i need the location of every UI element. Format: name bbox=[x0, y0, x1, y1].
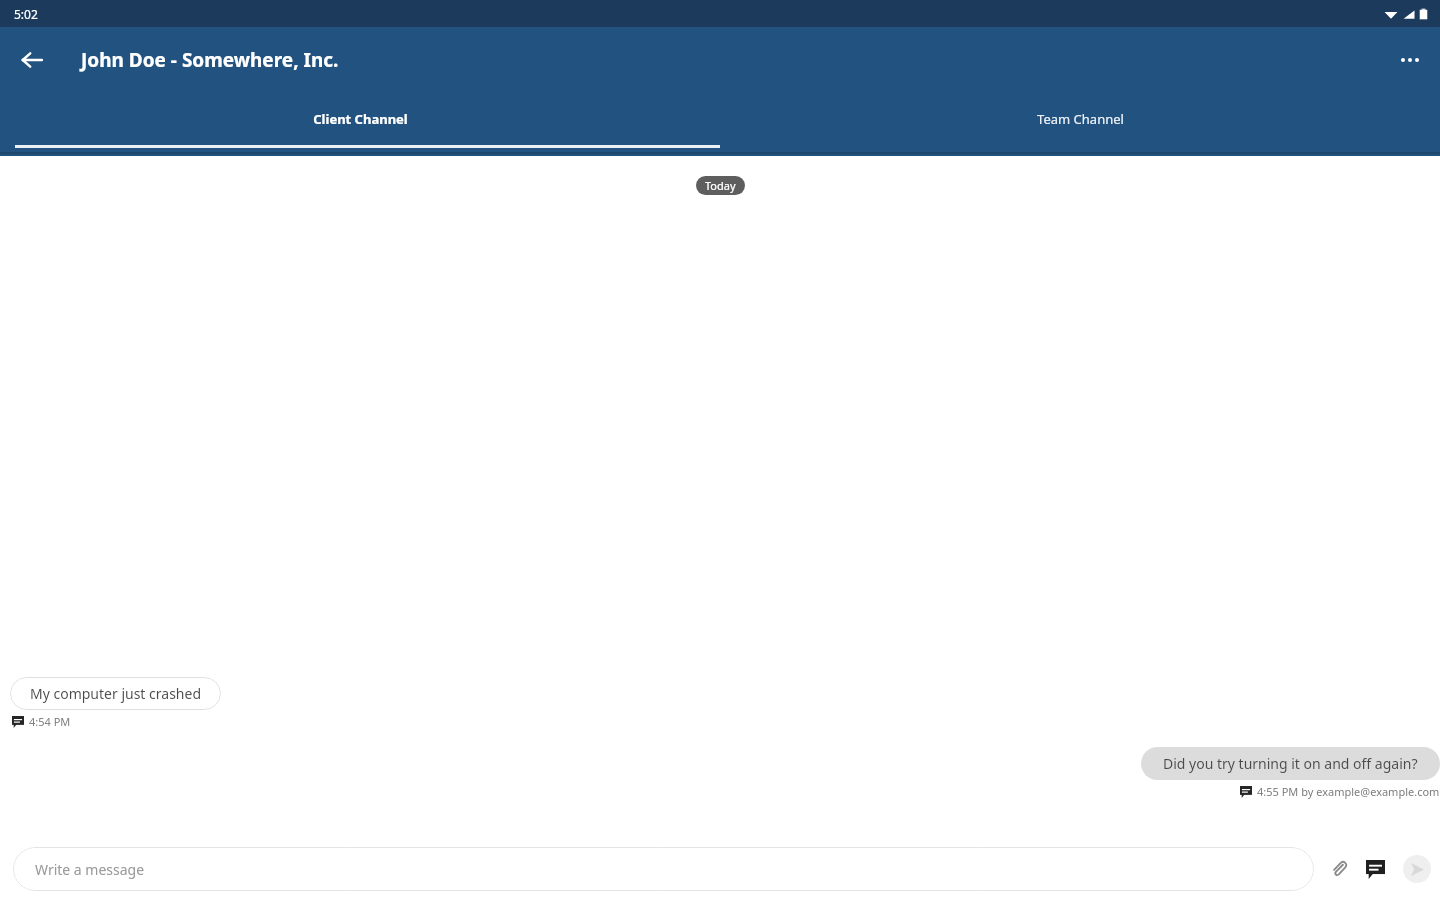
button[interactable]: Team Channel bbox=[720, 93, 1440, 145]
button[interactable]: My computer just crashed bbox=[10, 677, 221, 710]
staticText: My computer just crashed bbox=[30, 684, 201, 703]
button[interactable]: Write a message bbox=[13, 847, 1314, 891]
button[interactable]: Today bbox=[696, 176, 745, 195]
button[interactable]: Client Channel bbox=[0, 93, 720, 145]
button[interactable]: Back bbox=[10, 38, 54, 82]
staticText: Today bbox=[705, 178, 736, 193]
staticText: Write a message bbox=[35, 860, 145, 879]
button[interactable]: Canned responses bbox=[1359, 853, 1391, 885]
button[interactable]: Send bbox=[1403, 855, 1431, 883]
button[interactable]: Did you try turning it on and off again? bbox=[1141, 747, 1440, 780]
staticText: Team Channel bbox=[1037, 110, 1124, 128]
staticText: Client Channel bbox=[313, 110, 408, 128]
staticText: 5:02 bbox=[14, 6, 38, 22]
staticText: John Doe - Somewhere, Inc. bbox=[81, 47, 339, 73]
button[interactable]: Attach file bbox=[1323, 853, 1355, 885]
staticText: 4:55 PM by example@example.com bbox=[1257, 784, 1440, 799]
staticText: Did you try turning it on and off again? bbox=[1163, 754, 1418, 773]
staticText: 4:54 PM bbox=[29, 714, 71, 729]
button[interactable]: More options bbox=[1388, 38, 1432, 82]
